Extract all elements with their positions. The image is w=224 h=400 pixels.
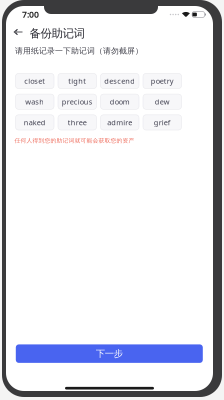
staticText: 请用纸记录一下助记词（请勿截屏）: [15, 46, 143, 56]
staticText: precious: [62, 97, 93, 107]
button[interactable]: Back: [13, 23, 26, 44]
staticText: 任何人得到您的助记词就可能会获取您的资产: [14, 137, 134, 144]
staticText: doom: [110, 97, 130, 107]
staticText: 备份助记词: [29, 26, 84, 41]
staticText: 下一步: [96, 348, 123, 360]
staticText: descend: [104, 76, 135, 86]
staticText: admire: [107, 117, 132, 127]
button[interactable]: 下一步: [16, 344, 203, 363]
staticText: three: [68, 117, 87, 127]
staticText: wash: [25, 97, 44, 107]
staticText: dew: [155, 97, 170, 107]
staticText: grief: [154, 117, 171, 127]
staticText: 7:00: [22, 9, 39, 20]
staticText: poetry: [151, 76, 174, 86]
staticText: tight: [68, 76, 86, 86]
staticText: naked: [24, 117, 46, 127]
staticText: closet: [24, 76, 45, 86]
